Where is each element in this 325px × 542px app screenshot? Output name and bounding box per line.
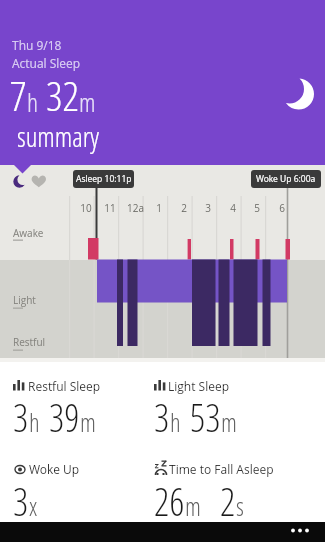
staticText: 3 (205, 201, 211, 214)
staticText: 11 (104, 201, 116, 214)
staticText: 53 (190, 391, 221, 443)
staticText: 10 (80, 201, 92, 214)
staticText: 5 (254, 201, 260, 214)
staticText: 3 (154, 391, 170, 443)
button[interactable] (283, 522, 325, 542)
staticText: Time to Fall Asleep (169, 461, 274, 477)
staticText: Light Sleep (168, 378, 229, 394)
button[interactable]: summary (17, 118, 100, 155)
staticText: 26 (154, 475, 185, 527)
staticText: 4 (230, 201, 236, 214)
staticText: 7 (10, 67, 27, 123)
staticText: x (29, 489, 38, 523)
staticText: 1 (156, 201, 162, 214)
staticText: Woke Up (29, 461, 80, 477)
staticText: Actual Sleep (12, 55, 81, 71)
staticText: Thu 9/18 (12, 37, 62, 53)
staticText: Asleep 10:11p (76, 173, 132, 185)
staticText: s (236, 489, 244, 523)
staticText: m (79, 84, 96, 119)
staticText: 39 (49, 391, 80, 443)
staticText: 32 (46, 67, 79, 123)
staticText: 2 (181, 201, 187, 214)
staticText: Woke Up 6:00a (256, 173, 316, 185)
staticText: 3 (13, 391, 29, 443)
staticText: m (221, 405, 237, 439)
staticText: Restful (13, 335, 46, 349)
staticText: 3 (13, 475, 29, 527)
staticText: m (185, 489, 201, 523)
staticText: Light (13, 293, 36, 307)
staticText: h (29, 405, 40, 439)
staticText: 6 (279, 201, 285, 214)
staticText: Awake (13, 226, 44, 240)
button[interactable]: Asleep 10:11p (73, 170, 134, 188)
staticText: 12a (127, 201, 144, 214)
staticText: h (27, 84, 39, 119)
button[interactable]: Woke Up 6:00a (251, 170, 321, 188)
staticText: h (170, 405, 181, 439)
staticText: m (80, 405, 96, 439)
staticText: 2 (220, 475, 236, 527)
staticText: Restful Sleep (28, 378, 101, 394)
